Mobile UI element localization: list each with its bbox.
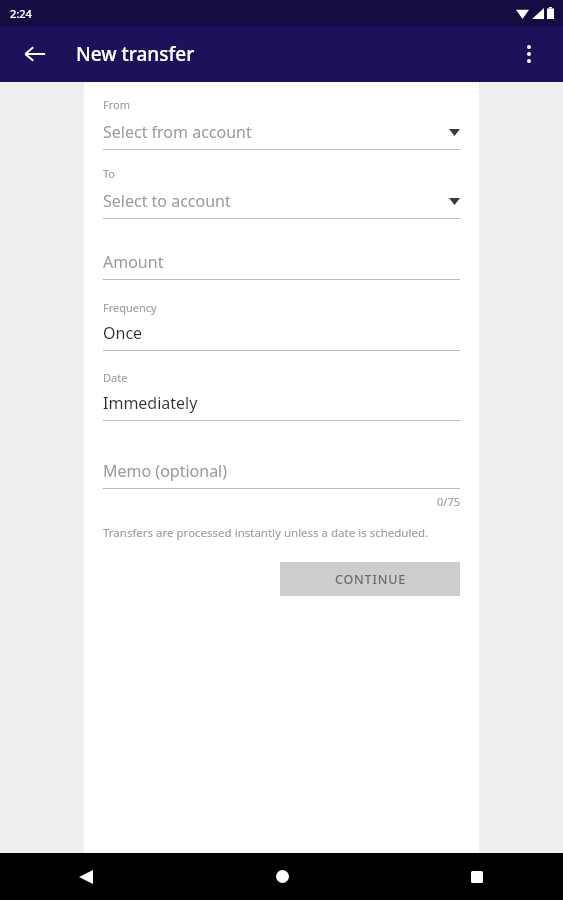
staticText: To [103,166,116,181]
button[interactable]: Date [103,370,460,421]
staticText: Date [103,370,128,385]
button[interactable]: Home [258,853,306,900]
button[interactable]: Memo (optional) [103,460,460,489]
staticText: Frequency [103,300,157,315]
staticText: 2:24 [10,6,32,21]
staticText: From [103,97,130,112]
button[interactable]: More options [509,34,549,74]
staticText: Immediately [103,392,198,414]
button[interactable]: Navigate up [13,32,57,76]
staticText: New transfer [76,41,195,67]
staticText: Select from account [103,121,449,143]
button[interactable]: Frequency [103,300,460,351]
staticText: Select to account [103,190,449,212]
button[interactable]: Recent apps [453,853,501,900]
staticText: 0/75 [103,494,460,509]
button[interactable]: Back [62,853,110,900]
button[interactable]: CONTINUE [280,562,460,596]
staticText: Amount [103,251,164,273]
staticText: Memo (optional) [103,460,228,482]
staticText: Once [103,322,143,344]
staticText: CONTINUE [335,571,406,588]
staticText: Transfers are processed instantly unless… [103,525,460,541]
button[interactable]: From [103,97,460,150]
button[interactable]: To [103,166,460,219]
button[interactable]: Amount [103,251,460,280]
